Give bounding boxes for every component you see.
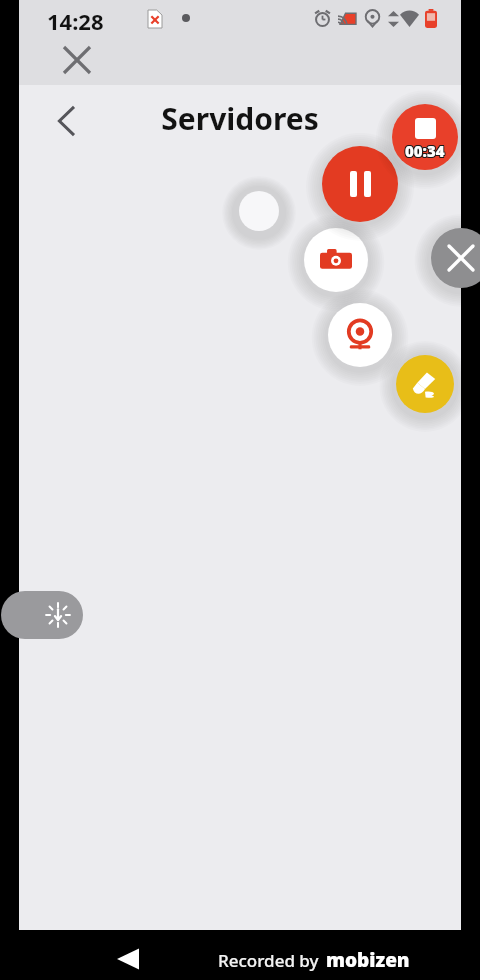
staticText: 00:34 [405,142,445,162]
staticText: Servidores [19,98,461,139]
staticText: 00:34 [404,142,444,162]
staticText: 14:28 [47,6,104,36]
button[interactable]: Pause [322,146,398,222]
staticText: 00:34 [406,142,446,162]
staticText: 00:34 [404,141,444,161]
staticText: Recorded by [218,949,319,972]
button[interactable]: Draw [396,355,454,413]
button[interactable]: Back [104,935,152,980]
staticText: 00:34 [404,140,444,160]
staticText: mobizen [326,947,410,973]
staticText: 00:34 [406,141,446,161]
staticText: 00:34 [406,140,446,160]
button[interactable]: Front camera [328,303,392,367]
staticText: 00:34 [405,141,445,161]
button[interactable]: Close [55,38,99,82]
button[interactable]: Dismiss [431,228,480,288]
button[interactable]: Back [43,97,91,145]
staticText: 00:34 [405,140,445,160]
button[interactable]: Brightness [1,591,83,639]
button[interactable]: Screenshot [304,228,368,292]
button[interactable] [239,191,279,231]
button[interactable]: Stop recording [392,104,458,170]
